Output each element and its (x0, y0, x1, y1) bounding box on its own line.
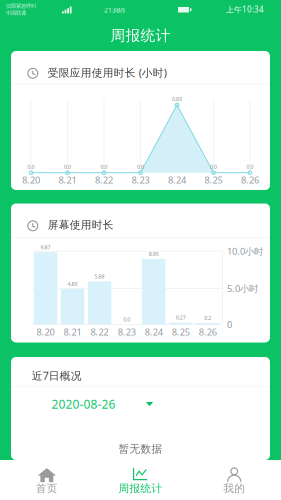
staticText: 8.22 (91, 326, 109, 338)
staticText: 8.21 (63, 326, 81, 338)
staticText: 8.21 (58, 174, 76, 186)
staticText: 0 (227, 318, 232, 331)
staticText: 4.85 (67, 280, 77, 287)
staticText: 暂无数据 (118, 442, 162, 455)
staticText: 213B/s (104, 6, 125, 14)
staticText: 8.24 (168, 174, 186, 186)
staticText: 近7日概况 (32, 368, 82, 383)
staticText: 仅限紧急呼叫 (6, 3, 36, 9)
staticText: 我的 (223, 482, 245, 495)
staticText: 5.88 (95, 273, 105, 280)
staticText: 周报统计 (119, 482, 163, 495)
staticText: 受限应用使用时长 (小时) (48, 65, 167, 80)
staticText: 0.27 (176, 314, 186, 321)
staticText: 0.0 (64, 163, 71, 170)
staticText: 0.0 (27, 163, 34, 170)
button[interactable]: 周报统计 (0, 460, 94, 500)
staticText: 8.25 (204, 174, 222, 186)
staticText: 8.23 (118, 326, 136, 338)
staticText: 0.0 (246, 163, 253, 170)
staticText: 中国联通 (6, 10, 26, 16)
button[interactable]: 首页 (0, 460, 94, 500)
staticText: 0.0 (210, 163, 217, 170)
staticText: 8.20 (36, 326, 54, 338)
staticText: 8.22 (95, 174, 113, 186)
staticText: 8.26 (199, 326, 217, 338)
staticText: 2020-08-26 (51, 396, 115, 412)
staticText: 8.25 (172, 326, 190, 338)
staticText: 0.0 (123, 316, 130, 323)
staticText: 5.0小时 (227, 282, 258, 295)
staticText: 10.0小时 (227, 245, 263, 257)
staticText: 8.23 (131, 174, 149, 186)
staticText: 0.0 (137, 163, 144, 170)
staticText: 上午10:34 (226, 4, 264, 15)
staticText: 8.26 (241, 174, 259, 186)
button[interactable]: 2020-08-26 (11, 387, 270, 421)
staticText: 屏幕使用时长 (48, 218, 114, 231)
staticText: 8.20 (22, 174, 40, 186)
staticText: 周报统计 (110, 26, 170, 44)
staticText: 0.0 (100, 163, 107, 170)
staticText: 9.87 (40, 244, 50, 251)
staticText: 0.93 (172, 95, 182, 103)
button[interactable]: 我的 (0, 460, 94, 500)
staticText: 8.95 (149, 250, 159, 257)
staticText: 0.2 (204, 314, 211, 322)
staticText: 8.24 (145, 326, 163, 338)
staticText: 首页 (36, 482, 58, 495)
